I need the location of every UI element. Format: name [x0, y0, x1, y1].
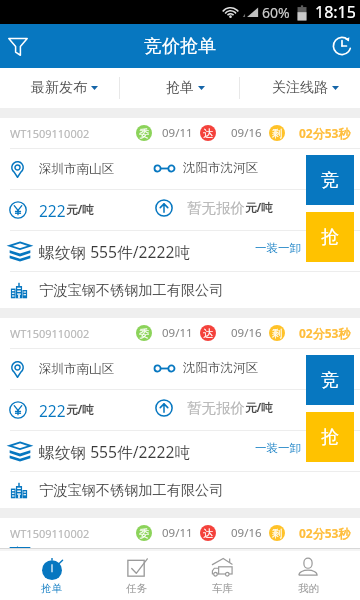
staticText: 剩 — [272, 127, 282, 140]
staticText: 暂无报价 — [187, 199, 245, 217]
staticText: 元/吨 — [66, 402, 94, 418]
staticText: 关注线路 — [272, 79, 328, 97]
staticText: 元/吨 — [66, 202, 94, 218]
button[interactable]: Filter — [0, 24, 36, 68]
button[interactable]: 竞 — [306, 155, 354, 205]
staticText: 09/16 — [231, 125, 262, 141]
staticText: 60% — [262, 3, 290, 22]
staticText: 委 — [139, 327, 149, 340]
staticText: 02分53秒 — [299, 125, 351, 141]
button[interactable]: WT1509110002 — [0, 118, 360, 308]
button[interactable]: 抢 — [306, 212, 354, 262]
staticText: 抢单 — [166, 79, 194, 97]
staticText: 沈阳市沈河区 — [183, 360, 258, 376]
staticText: 竞 — [321, 369, 339, 392]
button[interactable]: WT1509110002 — [0, 518, 360, 548]
staticText: 暂无报价 — [187, 399, 245, 417]
staticText: 抢单 — [41, 582, 62, 595]
staticText: 02分53秒 — [299, 525, 351, 541]
staticText: 我的 — [298, 582, 319, 595]
staticText: 任务 — [126, 582, 147, 595]
staticText: 螺纹钢 555件/2222吨 — [39, 441, 191, 462]
staticText: WT1509110002 — [10, 326, 90, 341]
button[interactable]: 抢单 — [165, 68, 205, 108]
staticText: 沈阳市沈河区 — [183, 160, 258, 176]
staticText: 元/吨 — [245, 400, 273, 416]
staticText: 剩 — [272, 327, 282, 340]
staticText: 一装一卸 — [255, 241, 301, 255]
staticText: WT1509110002 — [10, 526, 90, 541]
button[interactable]: 车库 — [179, 551, 265, 600]
button[interactable]: 我的 — [265, 551, 351, 600]
staticText: WT1509110002 — [10, 126, 90, 141]
button[interactable]: 最新发布 — [29, 68, 99, 108]
staticText: 车库 — [212, 582, 233, 595]
staticText: 一装一卸 — [255, 441, 301, 455]
staticText: 222 — [39, 200, 66, 221]
staticText: 沈阳市沈河区 — [183, 555, 258, 571]
staticText: 09/11 — [162, 125, 193, 141]
staticText: 09/11 — [162, 525, 193, 541]
staticText: 委 — [139, 527, 149, 540]
staticText: 深圳市南山区 — [39, 161, 114, 177]
staticText: 抢 — [321, 226, 339, 249]
staticText: 达 — [203, 127, 213, 140]
staticText: 09/11 — [162, 325, 193, 341]
staticText: 222 — [39, 400, 66, 421]
button[interactable]: WT1509110002 — [0, 318, 360, 508]
staticText: 达 — [203, 327, 213, 340]
button[interactable]: 竞 — [306, 355, 354, 405]
staticText: 螺纹钢 555件/2222吨 — [39, 241, 191, 262]
staticText: 09/16 — [231, 525, 262, 541]
staticText: 达 — [203, 527, 213, 540]
staticText: 竞价抢单 — [144, 35, 216, 58]
staticText: 剩 — [272, 527, 282, 540]
staticText: 抢 — [321, 426, 339, 449]
button[interactable]: 抢单 — [9, 551, 94, 600]
staticText: 竞 — [321, 169, 339, 192]
button[interactable]: 抢 — [306, 412, 354, 462]
staticText: 深圳市南山区 — [39, 361, 114, 377]
staticText: 委 — [139, 127, 149, 140]
button[interactable]: 任务 — [94, 551, 179, 600]
staticText: 宁波宝钢不锈钢加工有限公司 — [39, 281, 224, 299]
staticText: 宁波宝钢不锈钢加工有限公司 — [39, 481, 224, 499]
staticText: 02分53秒 — [299, 325, 351, 341]
staticText: 09/16 — [231, 325, 262, 341]
staticText: 18:15 — [315, 1, 356, 23]
staticText: 最新发布 — [31, 79, 87, 97]
button[interactable]: 关注线路 — [270, 68, 340, 108]
button[interactable]: History — [323, 24, 360, 68]
button[interactable]: 竞 — [306, 555, 354, 585]
staticText: 元/吨 — [245, 200, 273, 216]
